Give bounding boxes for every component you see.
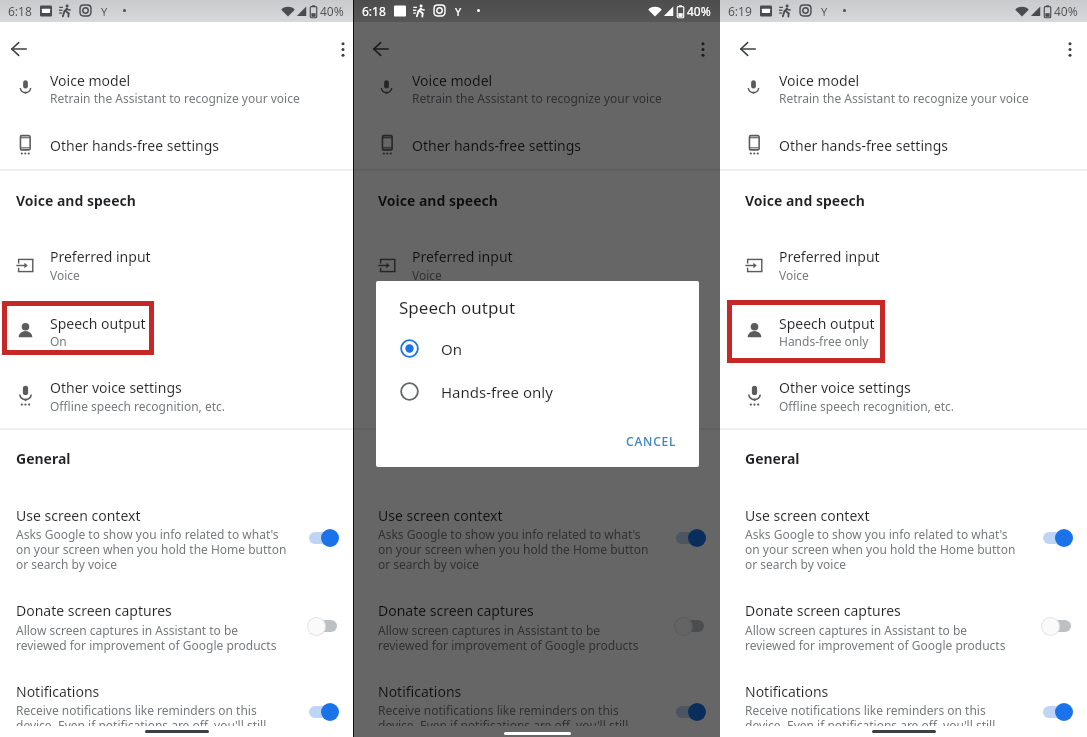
- staticText: or search by voice: [745, 556, 846, 572]
- staticText: General: [16, 449, 71, 468]
- button[interactable]: Donate screen captures: [720, 590, 1087, 656]
- staticText: or search by voice: [16, 556, 117, 572]
- staticText: Hands-free only: [779, 333, 869, 349]
- staticText: Use screen context: [16, 506, 141, 525]
- staticText: Use screen context: [745, 506, 870, 525]
- button[interactable]: Speech output. On: [354, 300, 720, 364]
- button[interactable]: Use screen context: [720, 494, 1087, 576]
- staticText: Receive notifications like reminders on …: [745, 702, 986, 718]
- button[interactable]: Notifications: [354, 670, 720, 726]
- staticText: Notifications: [16, 682, 100, 701]
- staticText: or search by voice: [378, 556, 479, 572]
- staticText: Speech output: [779, 314, 875, 333]
- staticText: Preferred input: [412, 247, 513, 266]
- button[interactable]: Back: [4, 34, 34, 64]
- staticText: Hands-free only: [441, 382, 553, 402]
- staticText: device. Even if notifications are off, y…: [16, 717, 267, 733]
- button[interactable]: Speech output. On: [0, 300, 353, 364]
- staticText: Other hands-free settings: [50, 136, 219, 155]
- staticText: reviewed for improvement of Google produ…: [16, 637, 277, 653]
- button[interactable]: More options: [688, 34, 718, 64]
- staticText: Voice and speech: [745, 191, 865, 210]
- button[interactable]: Voice model. Retrain the Assistant to re…: [720, 64, 1087, 114]
- button[interactable]: Back: [366, 34, 396, 64]
- staticText: 6:19: [728, 3, 752, 19]
- staticText: Donate screen captures: [16, 601, 172, 620]
- staticText: Speech output: [399, 296, 516, 319]
- button[interactable]: Other voice settings. Offline speech rec…: [0, 368, 353, 424]
- staticText: 6:18: [8, 3, 32, 19]
- staticText: Y: [455, 4, 462, 19]
- button[interactable]: More options: [328, 34, 358, 64]
- staticText: Voice model: [50, 71, 131, 90]
- staticText: On: [50, 333, 67, 349]
- staticText: Voice model: [412, 71, 493, 90]
- staticText: Voice model: [779, 71, 860, 90]
- staticText: Receive notifications like reminders on …: [16, 702, 257, 718]
- staticText: 6:18: [362, 3, 386, 19]
- staticText: Allow screen captures in Assistant to be: [378, 622, 601, 638]
- button[interactable]: Use screen context: [0, 494, 353, 576]
- staticText: device. Even if notifications are off, y…: [378, 717, 629, 733]
- button[interactable]: Back: [733, 34, 763, 64]
- button[interactable]: Toggle off: [1041, 615, 1075, 637]
- button[interactable]: Other hands-free settings: [0, 120, 353, 169]
- button[interactable]: More options: [1055, 34, 1085, 64]
- button[interactable]: Toggle on: [1041, 701, 1075, 723]
- button[interactable]: Voice model. Retrain the Assistant to re…: [0, 64, 353, 114]
- button[interactable]: Other hands-free settings: [720, 120, 1087, 169]
- staticText: Y: [821, 4, 828, 19]
- staticText: 40%: [1054, 3, 1078, 19]
- staticText: Other hands-free settings: [779, 136, 948, 155]
- staticText: Retrain the Assistant to recognize your …: [412, 90, 662, 106]
- staticText: Other hands-free settings: [412, 136, 581, 155]
- staticText: Y: [101, 4, 108, 19]
- button[interactable]: Notifications: [0, 670, 353, 726]
- button[interactable]: Donate screen captures: [354, 590, 720, 656]
- button[interactable]: Preferred input. Voice: [0, 240, 353, 296]
- staticText: General: [745, 449, 800, 468]
- staticText: Offline speech recognition, etc.: [779, 398, 954, 414]
- button[interactable]: Speech output. Hands-free only: [720, 300, 1087, 364]
- staticText: device. Even if notifications are off, y…: [745, 717, 996, 733]
- staticText: 40%: [687, 3, 711, 19]
- button[interactable]: Toggle on: [1041, 527, 1075, 549]
- button[interactable]: Other voice settings. Offline speech rec…: [720, 368, 1087, 424]
- staticText: Offline speech recognition, etc.: [50, 398, 225, 414]
- button[interactable]: Hands-free only: [376, 371, 699, 413]
- staticText: Speech output: [412, 314, 508, 333]
- button[interactable]: Toggle off: [674, 615, 708, 637]
- staticText: Speech output: [50, 314, 146, 333]
- staticText: reviewed for improvement of Google produ…: [378, 637, 639, 653]
- staticText: Asks Google to show you info related to …: [16, 526, 279, 542]
- staticText: Voice and speech: [16, 191, 136, 210]
- staticText: General: [378, 449, 433, 468]
- staticText: Asks Google to show you info related to …: [378, 526, 641, 542]
- button[interactable]: Toggle on: [307, 527, 341, 549]
- staticText: Voice: [412, 267, 442, 283]
- staticText: 40%: [320, 3, 344, 19]
- button[interactable]: Toggle on: [307, 701, 341, 723]
- button[interactable]: Toggle off: [307, 615, 341, 637]
- button[interactable]: CANCEL: [612, 427, 691, 454]
- button[interactable]: Other hands-free settings: [354, 120, 720, 169]
- button[interactable]: Donate screen captures: [0, 590, 353, 656]
- staticText: Use screen context: [378, 506, 503, 525]
- button[interactable]: Notifications: [720, 670, 1087, 726]
- staticText: Notifications: [378, 682, 462, 701]
- staticText: Preferred input: [779, 247, 880, 266]
- button[interactable]: Voice model. Retrain the Assistant to re…: [354, 64, 720, 114]
- staticText: Donate screen captures: [378, 601, 534, 620]
- button[interactable]: Preferred input. Voice: [720, 240, 1087, 296]
- button[interactable]: Preferred input. Voice: [354, 240, 720, 296]
- staticText: on your screen when you hold the Home bu…: [745, 541, 1016, 557]
- staticText: Retrain the Assistant to recognize your …: [50, 90, 300, 106]
- staticText: On: [441, 339, 462, 359]
- button[interactable]: On: [376, 328, 699, 370]
- button[interactable]: Other voice settings. Offline speech rec…: [354, 368, 720, 424]
- button[interactable]: Use screen context: [354, 494, 720, 576]
- staticText: Offline speech recognition, etc.: [412, 398, 587, 414]
- staticText: on your screen when you hold the Home bu…: [378, 541, 649, 557]
- button[interactable]: Toggle on: [674, 527, 708, 549]
- button[interactable]: Toggle on: [674, 701, 708, 723]
